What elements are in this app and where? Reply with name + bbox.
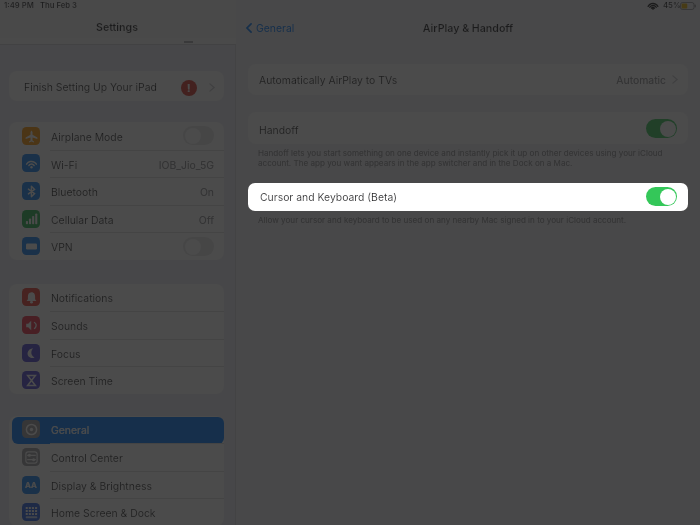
staticText: AA xyxy=(25,480,37,490)
staticText: Screen Time xyxy=(51,375,211,388)
staticText: Settings xyxy=(47,21,187,34)
staticText: Handoff lets you start something on one … xyxy=(258,148,698,158)
staticText: ! xyxy=(187,82,191,94)
staticText: Cellular Data xyxy=(51,214,211,227)
staticText: Bluetooth xyxy=(51,186,211,199)
button[interactable] xyxy=(9,177,224,205)
staticText: Handoff xyxy=(259,124,379,137)
button[interactable] xyxy=(9,311,224,339)
staticText: Control Center xyxy=(51,452,211,465)
button[interactable] xyxy=(248,112,688,144)
staticText: IOB_Jio_5G xyxy=(74,159,214,172)
staticText: account. The app you want appears in the… xyxy=(258,158,698,168)
button[interactable] xyxy=(9,150,224,178)
button[interactable] xyxy=(9,232,224,260)
button[interactable] xyxy=(248,183,688,211)
button[interactable] xyxy=(9,498,224,525)
staticText: On xyxy=(74,186,214,199)
staticText: General xyxy=(51,424,211,437)
button[interactable] xyxy=(9,366,224,394)
staticText: 45% xyxy=(663,1,693,10)
staticText: 1:49 PM xyxy=(4,1,64,10)
button[interactable]: Back to General xyxy=(243,18,301,38)
staticText: Automatically AirPlay to TVs xyxy=(259,74,479,87)
button[interactable] xyxy=(9,205,224,233)
button[interactable] xyxy=(9,416,224,444)
button[interactable] xyxy=(248,64,688,95)
staticText: Focus xyxy=(51,348,211,361)
staticText: AirPlay & Handoff xyxy=(358,22,578,35)
button[interactable] xyxy=(9,122,224,150)
staticText: Cursor and Keyboard (Beta) xyxy=(260,191,480,204)
button[interactable] xyxy=(9,443,224,471)
staticText: Finish Setting Up Your iPad xyxy=(24,81,204,94)
button[interactable]: Handoff, on xyxy=(646,119,677,138)
button[interactable] xyxy=(9,339,224,367)
button[interactable] xyxy=(9,284,224,312)
staticText: Display & Brightness xyxy=(51,480,211,493)
staticText: VPN xyxy=(51,241,211,254)
staticText: Off xyxy=(74,214,214,227)
staticText: Home Screen & Dock xyxy=(51,507,211,520)
staticText: Allow your cursor and keyboard to be use… xyxy=(258,215,698,225)
button[interactable]: Cursor and Keyboard (Beta), on xyxy=(646,187,677,206)
staticText: Thu Feb 3 xyxy=(40,1,120,10)
staticText: Airplane Mode xyxy=(51,131,211,144)
button[interactable] xyxy=(9,471,224,499)
staticText: Sounds xyxy=(51,320,211,333)
staticText: General xyxy=(256,22,316,35)
staticText: Wi-Fi xyxy=(51,159,211,172)
button[interactable] xyxy=(9,71,224,101)
staticText: Notifications xyxy=(51,292,211,305)
staticText: Automatic xyxy=(526,74,666,87)
